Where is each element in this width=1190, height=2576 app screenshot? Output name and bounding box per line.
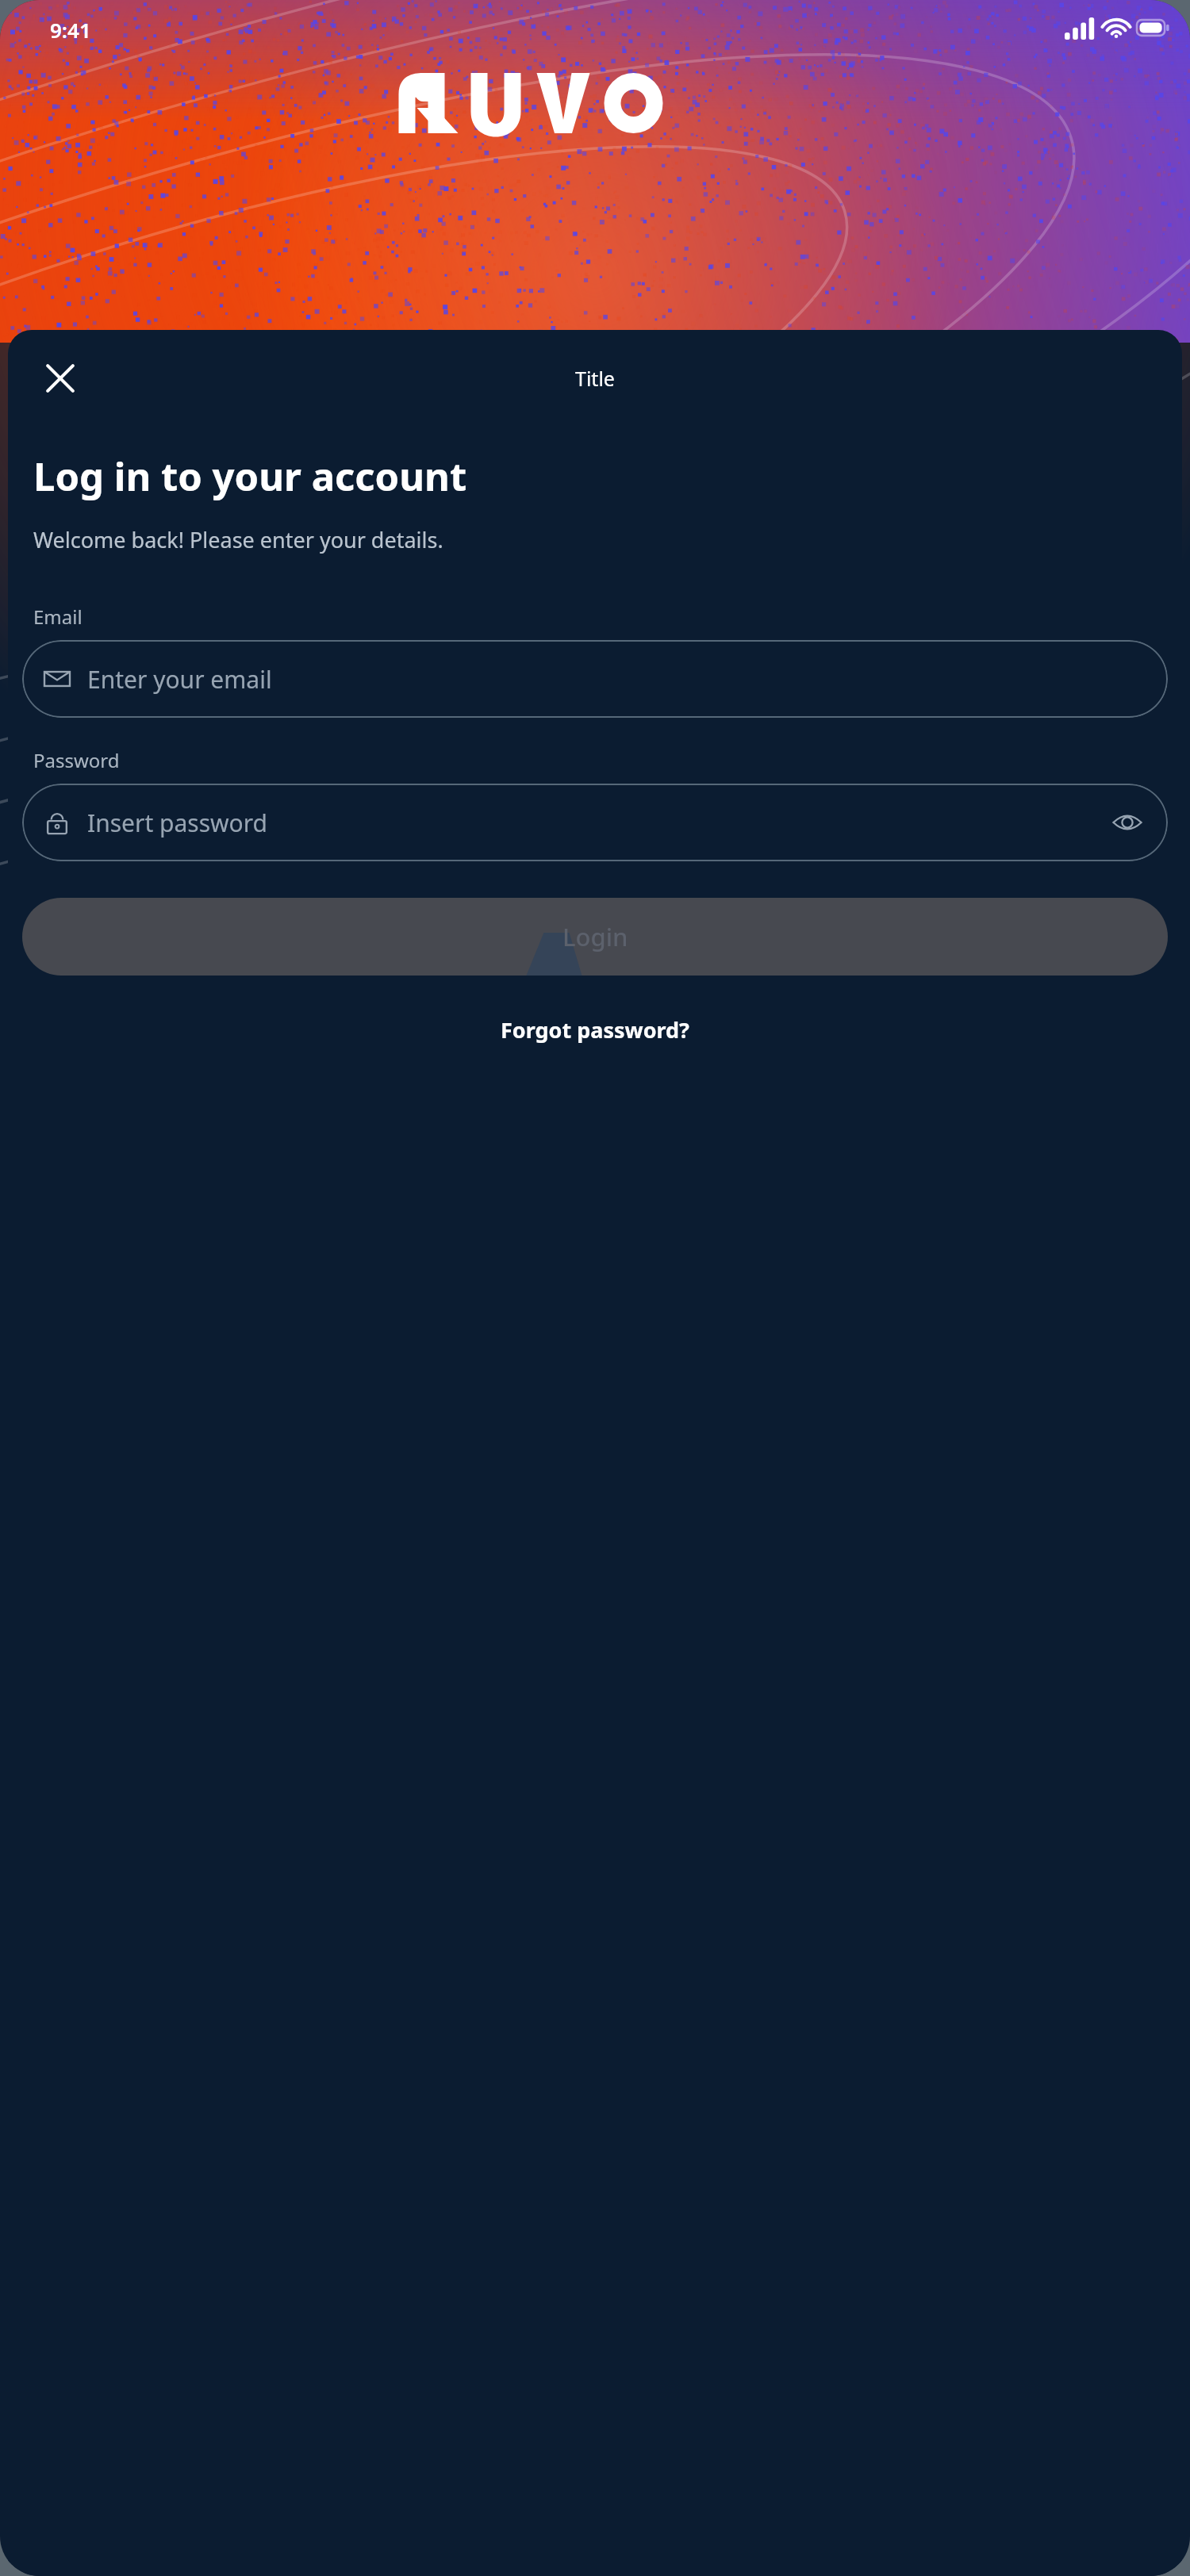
staticText: Login <box>562 920 628 953</box>
staticText: Title <box>575 365 615 392</box>
button[interactable]: Close <box>40 358 81 399</box>
staticText: Welcome back! Please enter your details. <box>33 525 443 554</box>
staticText: Log in to your account <box>33 450 467 503</box>
button[interactable]: Show password <box>1109 804 1146 841</box>
staticText: Enter your email <box>87 663 1146 696</box>
button[interactable]: Forgot password? <box>488 1009 702 1051</box>
staticText: Insert password <box>87 807 1109 839</box>
staticText: 9:41 <box>50 16 91 44</box>
staticText: Email <box>33 604 83 630</box>
staticText: Password <box>33 747 120 773</box>
button[interactable]: Insert password <box>22 784 1168 861</box>
staticText: Forgot password? <box>501 1015 689 1045</box>
button[interactable]: Enter your email <box>22 640 1168 718</box>
button[interactable]: Login <box>22 898 1168 976</box>
